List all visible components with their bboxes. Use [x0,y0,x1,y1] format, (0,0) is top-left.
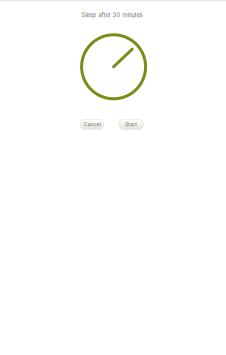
staticText: Cancel [83,121,100,127]
button[interactable]: Cancel [80,119,104,129]
staticText: Start [125,121,137,127]
button[interactable]: Start [119,119,143,129]
staticText: Sleep after 30 minutes [81,12,142,18]
